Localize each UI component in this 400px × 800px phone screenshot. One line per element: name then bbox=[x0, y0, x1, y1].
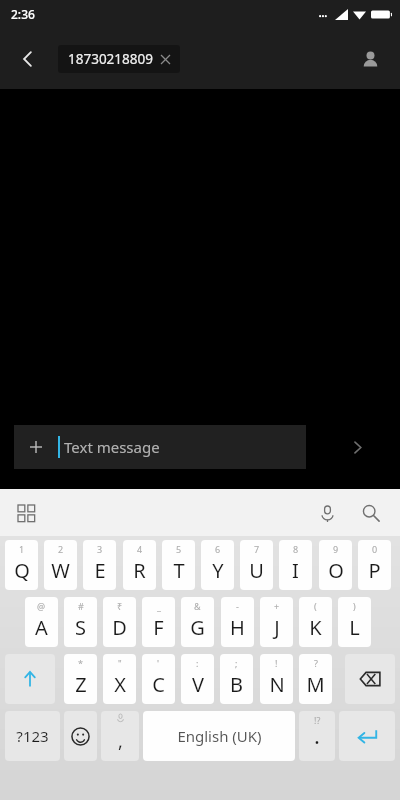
staticText: # bbox=[78, 600, 84, 612]
staticText: Z bbox=[75, 671, 87, 698]
staticText: - bbox=[236, 600, 239, 612]
button[interactable]: + bbox=[260, 597, 293, 647]
staticText: @ bbox=[37, 600, 46, 612]
staticText: H bbox=[230, 614, 245, 641]
staticText: ( bbox=[314, 600, 317, 612]
staticText: 6 bbox=[215, 543, 221, 555]
button[interactable]: Attach bbox=[14, 425, 58, 469]
staticText: C bbox=[152, 671, 165, 698]
staticText: English (UK) bbox=[177, 726, 262, 746]
button[interactable]: Shift bbox=[5, 654, 55, 704]
button[interactable]: _ bbox=[142, 597, 175, 647]
staticText: F bbox=[153, 614, 164, 641]
button[interactable]: Contacts bbox=[350, 39, 390, 79]
staticText: U bbox=[249, 557, 264, 584]
button[interactable]: Send bbox=[335, 425, 379, 469]
staticText: K bbox=[309, 614, 322, 641]
button[interactable]: Enter bbox=[339, 711, 395, 761]
staticText: T bbox=[173, 557, 185, 584]
button[interactable]: : bbox=[181, 654, 214, 704]
staticText: 0 bbox=[372, 543, 378, 555]
button[interactable]: * bbox=[64, 654, 97, 704]
staticText: * bbox=[78, 657, 83, 669]
staticText: Text message bbox=[64, 437, 160, 457]
staticText: 2:36 bbox=[11, 6, 35, 22]
staticText: 3 bbox=[97, 543, 103, 555]
staticText: N bbox=[269, 671, 285, 698]
staticText: ? bbox=[314, 657, 318, 669]
staticText: ' bbox=[157, 657, 160, 669]
button[interactable]: ' bbox=[142, 654, 175, 704]
staticText: W bbox=[51, 557, 70, 584]
staticText: _ bbox=[157, 600, 161, 612]
button[interactable]: 18730218809 bbox=[58, 45, 180, 73]
button[interactable]: Emoji bbox=[64, 711, 97, 761]
staticText: 1 bbox=[19, 543, 25, 555]
staticText: L bbox=[349, 614, 360, 641]
staticText: I bbox=[292, 557, 299, 584]
staticText: 5 bbox=[176, 543, 182, 555]
button[interactable]: " bbox=[103, 654, 136, 704]
button[interactable]: 2 bbox=[44, 540, 77, 590]
staticText: P bbox=[368, 557, 381, 584]
button[interactable]: 6 bbox=[201, 540, 234, 590]
staticText: E bbox=[94, 557, 106, 584]
staticText: + bbox=[274, 600, 280, 612]
staticText: ?123 bbox=[16, 726, 49, 746]
staticText: · bbox=[314, 726, 320, 756]
button[interactable]: 3 bbox=[83, 540, 116, 590]
button[interactable]: Attach bbox=[14, 425, 306, 469]
staticText: V bbox=[192, 671, 204, 698]
button[interactable]: Voice input bbox=[310, 496, 344, 530]
button[interactable]: !? bbox=[299, 711, 335, 761]
button[interactable]: Keyboard layouts bbox=[9, 496, 43, 530]
button[interactable]: @ bbox=[25, 597, 58, 647]
staticText: ! bbox=[275, 657, 278, 669]
button[interactable]: ?123 bbox=[5, 711, 60, 761]
staticText: 7 bbox=[254, 543, 260, 555]
staticText: 9 bbox=[333, 543, 339, 555]
button[interactable]: ₹ bbox=[103, 597, 136, 647]
button[interactable]: & bbox=[181, 597, 214, 647]
button[interactable]: ( bbox=[299, 597, 332, 647]
button[interactable]: 7 bbox=[240, 540, 273, 590]
staticText: 2 bbox=[58, 543, 64, 555]
button[interactable]: 9 bbox=[319, 540, 352, 590]
button[interactable]: 1 bbox=[5, 540, 38, 590]
button[interactable]: English (UK) bbox=[143, 711, 295, 761]
button[interactable]: Search bbox=[354, 496, 388, 530]
button[interactable]: 0 bbox=[358, 540, 391, 590]
button[interactable]: # bbox=[64, 597, 97, 647]
staticText: 18730218809 bbox=[68, 50, 153, 68]
button[interactable]: ! bbox=[260, 654, 293, 704]
button[interactable]: ) bbox=[338, 597, 371, 647]
button[interactable]: 4 bbox=[123, 540, 156, 590]
staticText: O bbox=[328, 557, 344, 584]
button[interactable]: 5 bbox=[162, 540, 195, 590]
staticText: !? bbox=[314, 714, 321, 726]
staticText: B bbox=[230, 671, 243, 698]
button[interactable]: ? bbox=[299, 654, 332, 704]
staticText: J bbox=[274, 614, 280, 641]
staticText: Q bbox=[14, 557, 30, 584]
staticText: " bbox=[118, 657, 122, 669]
staticText: 4 bbox=[137, 543, 143, 555]
staticText: D bbox=[112, 614, 127, 641]
staticText: : bbox=[196, 657, 199, 669]
button[interactable]: ; bbox=[220, 654, 253, 704]
staticText: , bbox=[118, 729, 123, 754]
button[interactable]: - bbox=[221, 597, 254, 647]
staticText: & bbox=[194, 600, 201, 612]
button[interactable]: Back bbox=[8, 39, 48, 79]
staticText: ) bbox=[353, 600, 356, 612]
button[interactable]: Backspace bbox=[345, 654, 395, 704]
staticText: ₹ bbox=[117, 600, 123, 612]
button[interactable]: 8 bbox=[279, 540, 312, 590]
staticText: ; bbox=[235, 657, 238, 669]
staticText: 8 bbox=[293, 543, 299, 555]
staticText: Y bbox=[212, 557, 224, 584]
button[interactable]: , bbox=[101, 711, 139, 761]
staticText: X bbox=[114, 671, 126, 698]
staticText: G bbox=[190, 614, 205, 641]
staticText: A bbox=[35, 614, 48, 641]
